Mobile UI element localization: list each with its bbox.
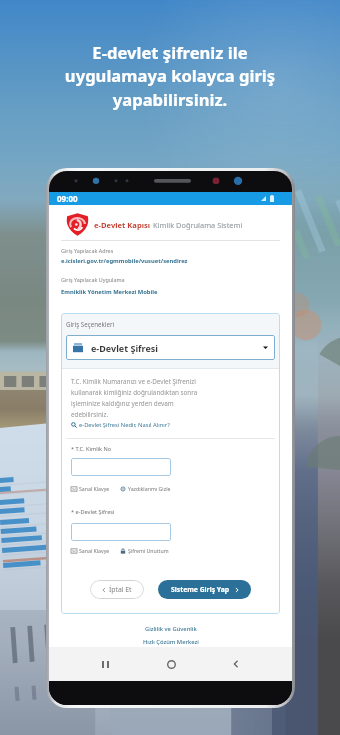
staticText: Yazdıklarımı Gizle (128, 485, 171, 492)
button[interactable]: Recents (95, 654, 115, 674)
staticText: e-Devlet Kapısı (94, 220, 151, 230)
staticText: * T.C. Kimlik No (71, 445, 112, 453)
staticText: E-devlet şifreniz ile uygulamaya kolayca… (55, 41, 285, 111)
staticText: İptal Et (109, 585, 132, 594)
staticText: e.icisleri.gov.tr/egmmobile/vusuet/sendi… (61, 257, 188, 265)
staticText: e-Devlet Şifresi (91, 342, 159, 354)
staticText: Şifremi Unuttum (128, 547, 169, 554)
button[interactable]: Back (226, 654, 246, 674)
staticText: e-Devlet Şifresi Nedir, Nasıl Alınır? (79, 421, 170, 429)
button[interactable]: e-Devlet Şifresi Nedir, Nasıl Alınır? (71, 421, 170, 429)
button[interactable]: Sisteme Giriş Yap (158, 580, 251, 599)
staticText: 09:00 (57, 193, 78, 204)
staticText: Sanal Klavye (79, 485, 110, 492)
button[interactable]: Hızlı Çözüm Merkezi (143, 638, 199, 646)
staticText: * e-Devlet Şifresi (71, 508, 115, 516)
button[interactable]: e-Devlet Şifresi (66, 335, 275, 360)
staticText: Kimlik Doğrulama Sistemi (153, 220, 243, 230)
staticText: Sisteme Giriş Yap (171, 585, 230, 594)
staticText: Giriş Yapılacak Uygulama (61, 276, 125, 283)
staticText: Sanal Klavye (79, 547, 110, 554)
button[interactable]: Home (161, 654, 181, 674)
staticText: Emniklik Yönetim Merkezi Mobile (61, 288, 158, 296)
button[interactable]: Gizlilik ve Güvenlik (145, 625, 197, 633)
staticText: T.C. Kimlik Numaranızı ve e-Devlet Şifre… (71, 377, 205, 418)
staticText: Giriş Yapılacak Adres (61, 247, 114, 254)
staticText: Giriş Seçenekleri (66, 320, 115, 328)
button[interactable]: İptal Et (90, 580, 144, 599)
